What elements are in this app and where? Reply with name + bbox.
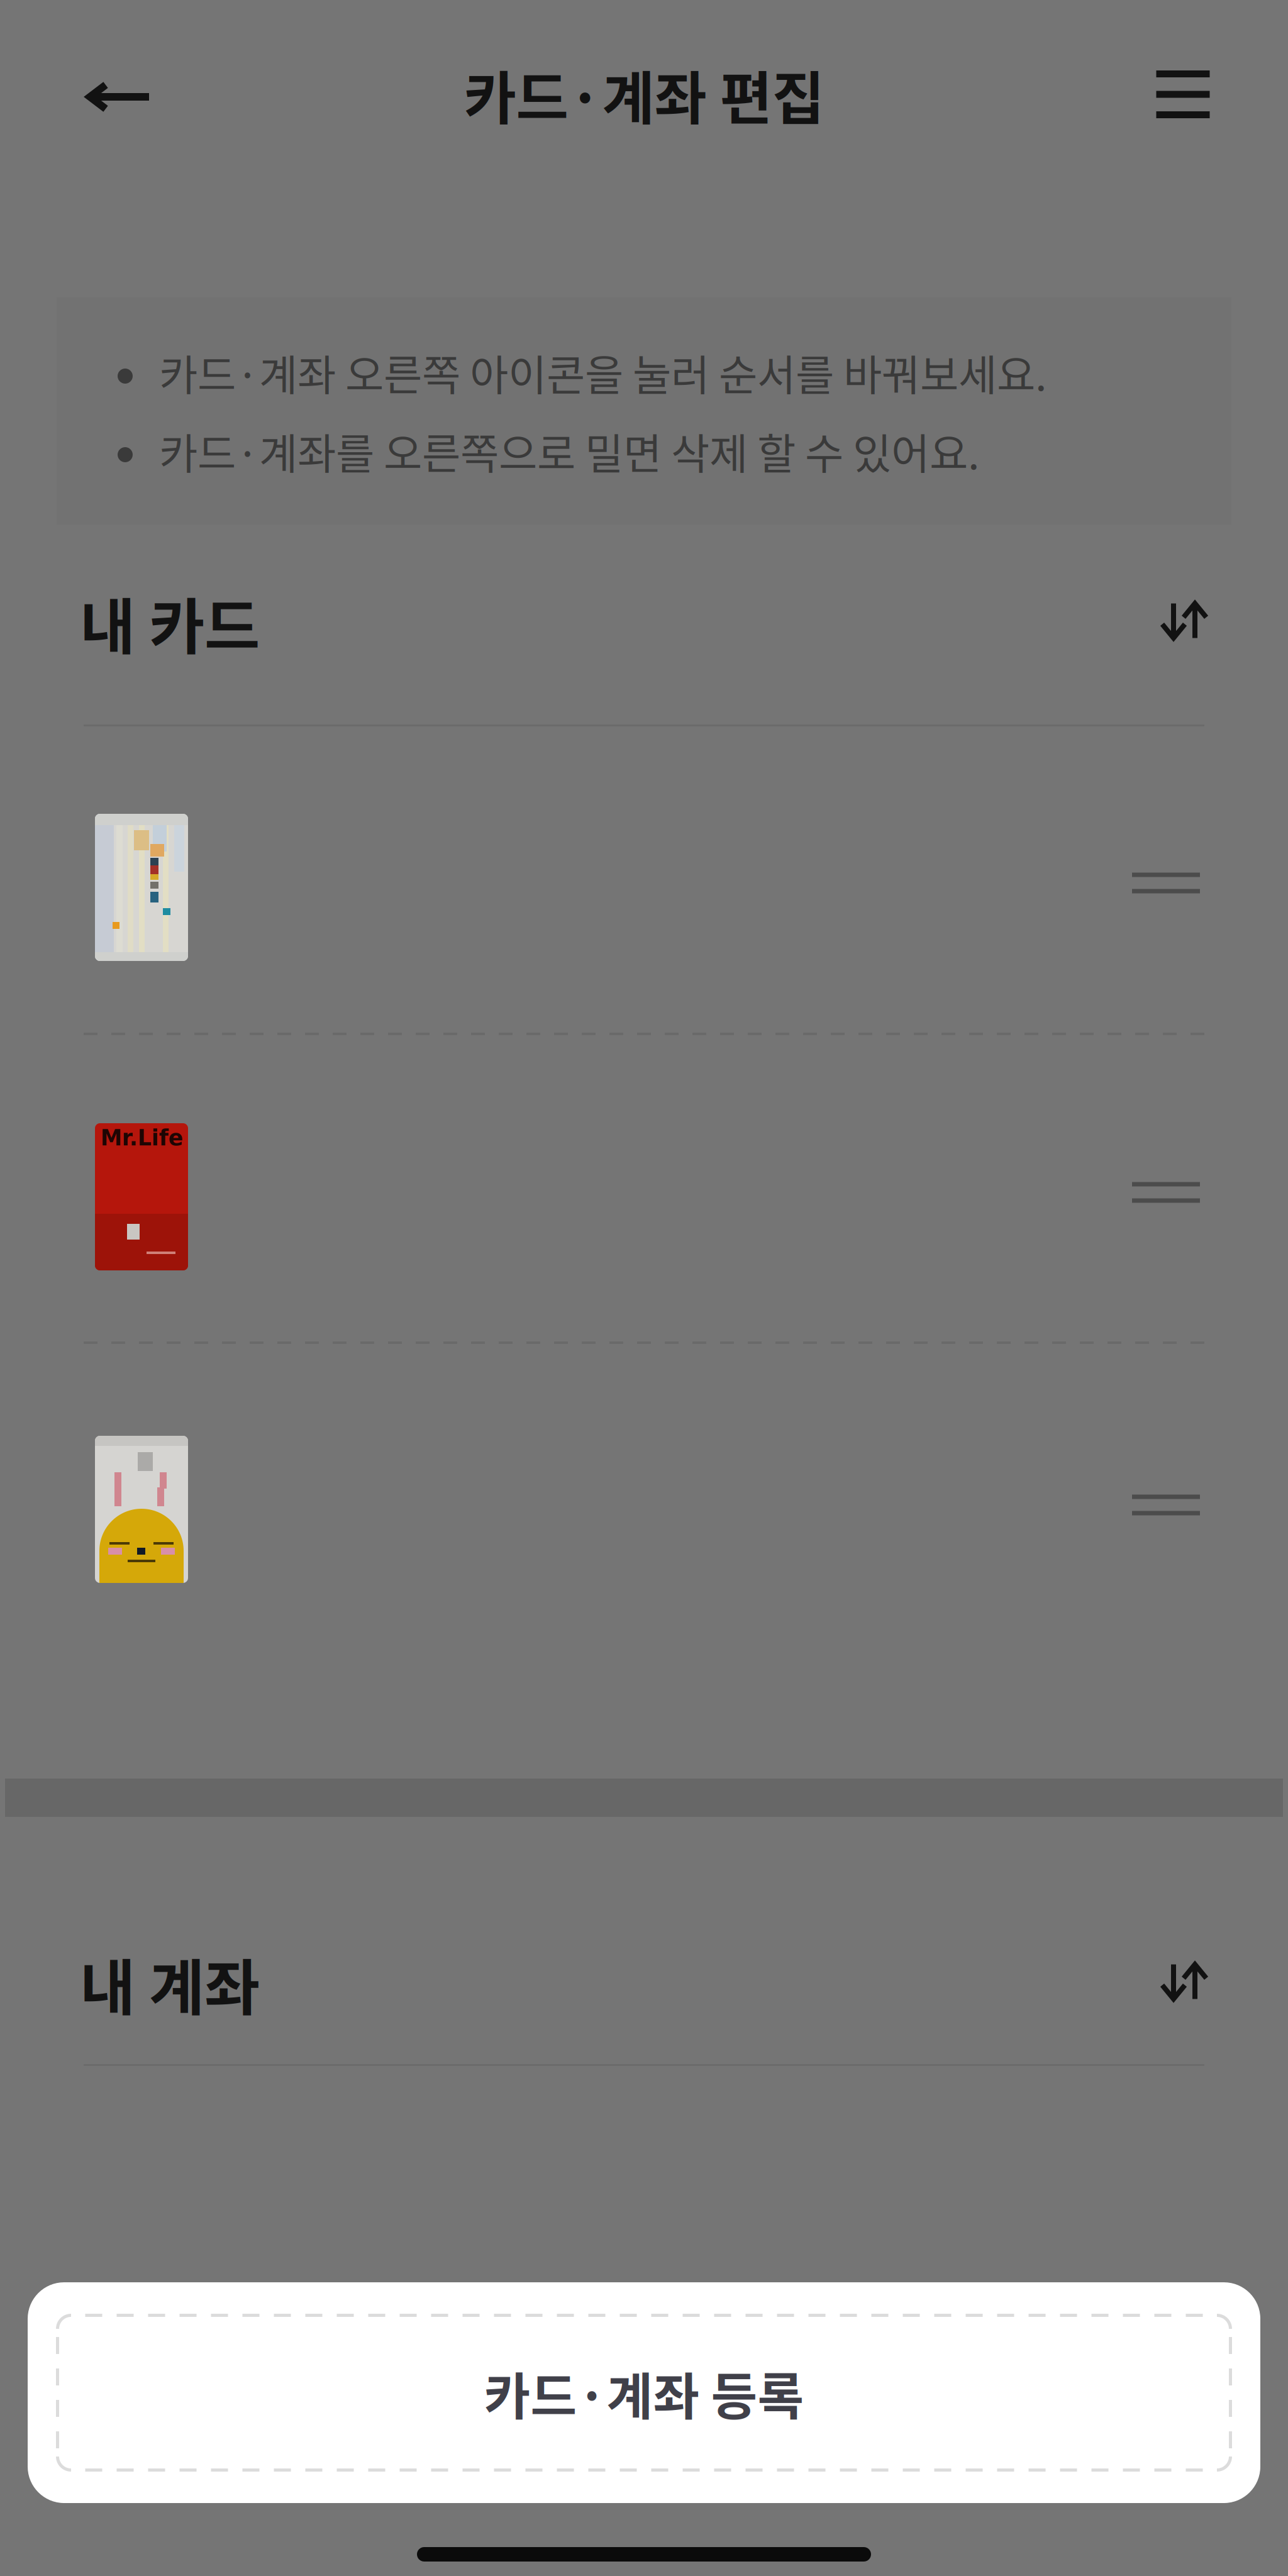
button[interactable]: 뒤로	[55, 40, 180, 153]
staticText: Mr.Life	[101, 1125, 184, 1151]
staticText: 카드·계좌 오른쪽 아이콘을 눌러 순서를 바꿔보세요.	[159, 342, 1047, 403]
staticText: 카드·계좌 편집	[464, 53, 824, 136]
button[interactable]: Mr.Life 카드	[0, 1123, 1288, 1270]
staticText: 카드·계좌를 오른쪽으로 밀면 삭제 할 수 있어요.	[159, 421, 980, 481]
button[interactable]: 세 번째 카드	[0, 1436, 1288, 1583]
button[interactable]: 카드·계좌 등록	[56, 2314, 1232, 2472]
button[interactable]: 내 계좌 순서 변경	[1137, 1938, 1231, 2032]
button[interactable]: 첫 번째 카드	[0, 814, 1288, 961]
staticText: 내 계좌	[80, 1940, 260, 2027]
button[interactable]: 메뉴	[1120, 38, 1246, 151]
button[interactable]: 내 카드 순서 변경	[1137, 577, 1231, 671]
staticText: 내 카드	[80, 579, 260, 666]
staticText: 카드·계좌 등록	[484, 2356, 804, 2429]
